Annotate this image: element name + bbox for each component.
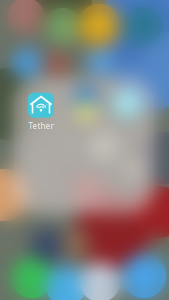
staticText: Tether bbox=[28, 121, 53, 131]
button[interactable]: Tether bbox=[28, 93, 54, 131]
